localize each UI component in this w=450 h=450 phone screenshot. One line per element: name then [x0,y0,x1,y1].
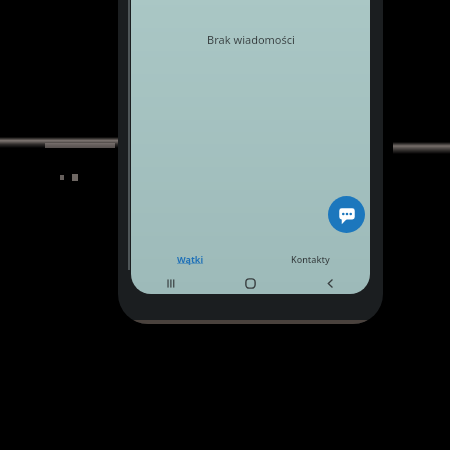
button[interactable]: Wątki [131,246,250,272]
button[interactable]: Ekran główny [210,272,290,294]
button[interactable]: Ostatnie [131,272,210,294]
staticText: Kontakty [291,253,330,265]
button[interactable]: Wstecz [290,272,370,294]
staticText: Brak wiadomości [207,32,295,47]
button[interactable]: Kontakty [250,246,370,272]
staticText: Wątki [177,253,204,265]
button[interactable]: Nowa wiadomość [328,196,365,233]
